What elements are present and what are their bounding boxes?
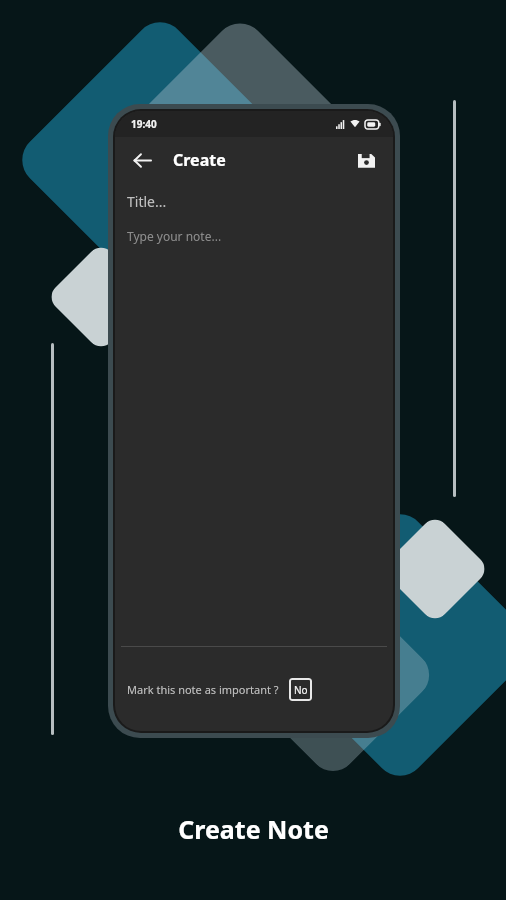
button[interactable]: Title... (115, 183, 393, 219)
staticText: Create (173, 149, 226, 171)
staticText: No (294, 683, 308, 697)
staticText: Create Note (178, 812, 329, 846)
staticText: 19:40 (131, 117, 157, 131)
staticText: Title... (127, 192, 167, 211)
button[interactable]: No (289, 678, 312, 701)
button[interactable]: Type your note... (115, 219, 393, 253)
staticText: Type your note... (127, 228, 222, 244)
button[interactable]: Back (125, 143, 159, 177)
button[interactable]: Save (349, 143, 383, 177)
staticText: Mark this note as important ? (127, 682, 279, 697)
